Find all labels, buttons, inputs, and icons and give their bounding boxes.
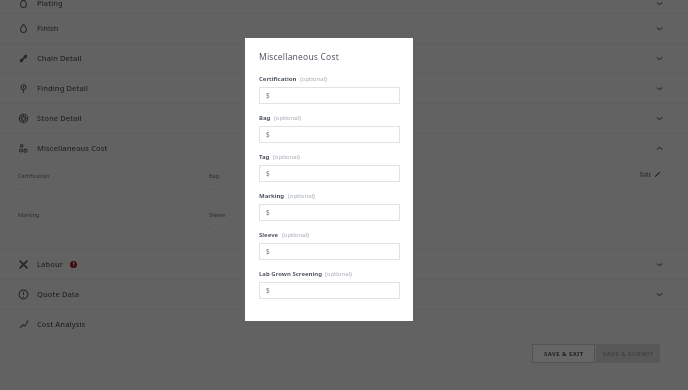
button[interactable]: Finish (0, 13, 688, 43)
staticText: (optional) (325, 270, 352, 278)
staticText: SAVE & EXIT (544, 350, 584, 358)
button[interactable]: $ (259, 87, 400, 104)
staticText: $ (266, 247, 270, 256)
staticText: Lab Grown Screening (259, 270, 322, 278)
staticText: Plating (37, 0, 63, 8)
staticText: Miscellaneous Cost (37, 143, 108, 153)
button[interactable]: Edit (638, 168, 663, 180)
button[interactable]: $ (259, 243, 400, 260)
staticText: $ (266, 208, 270, 217)
staticText: Sleeve (259, 231, 279, 239)
staticText: - (18, 224, 20, 231)
staticText: ! (73, 261, 75, 268)
staticText: Labour (37, 259, 64, 269)
staticText: (optional) (274, 114, 301, 122)
staticText: Bag (259, 114, 271, 122)
staticText: Edit (640, 170, 651, 178)
staticText: Quote Data (37, 289, 80, 299)
button[interactable]: Cost Analysis (0, 309, 688, 339)
button[interactable]: Miscellaneous Cost (0, 133, 688, 163)
button[interactable]: $ (259, 126, 400, 143)
button[interactable]: Stone Detail (0, 103, 688, 133)
staticText: Marking (259, 192, 285, 200)
staticText: (optional) (300, 75, 327, 83)
button[interactable]: SAVE & EXIT (532, 344, 595, 363)
staticText: (optional) (282, 231, 309, 239)
staticText: Marking (18, 211, 40, 218)
button[interactable]: Finding Detail (0, 73, 688, 103)
staticText: SAVE & SUBMIT (603, 350, 654, 358)
staticText: (optional) (273, 153, 300, 161)
staticText: Finish (37, 23, 59, 33)
staticText: (optional) (288, 192, 315, 200)
staticText: $ (266, 130, 270, 139)
staticText: - (18, 185, 20, 192)
staticText: Bag (209, 172, 220, 179)
staticText: $ (266, 169, 270, 178)
staticText: $ (266, 286, 270, 295)
staticText: Stone Detail (37, 113, 82, 123)
staticText: Sleeve (209, 211, 226, 218)
staticText: $ (266, 91, 270, 100)
button[interactable]: SAVE & SUBMIT (596, 344, 660, 363)
staticText: Finding Detail (37, 83, 89, 93)
button[interactable]: $ (259, 282, 400, 299)
staticText: Certification (259, 75, 297, 83)
staticText: Chain Detail (37, 53, 82, 63)
staticText: Cost Analysis (37, 319, 86, 329)
staticText: Miscellaneous Cost (259, 51, 339, 63)
staticText: - (209, 224, 211, 231)
button[interactable]: Chain Detail (0, 43, 688, 73)
button[interactable]: Plating (0, 0, 688, 18)
staticText: Certification (18, 172, 50, 179)
button[interactable]: $ (259, 165, 400, 182)
button[interactable]: Labour (0, 249, 688, 279)
staticText: Tag (259, 153, 270, 161)
staticText: - (209, 185, 211, 192)
button[interactable]: Quote Data (0, 279, 688, 309)
button[interactable]: $ (259, 204, 400, 221)
